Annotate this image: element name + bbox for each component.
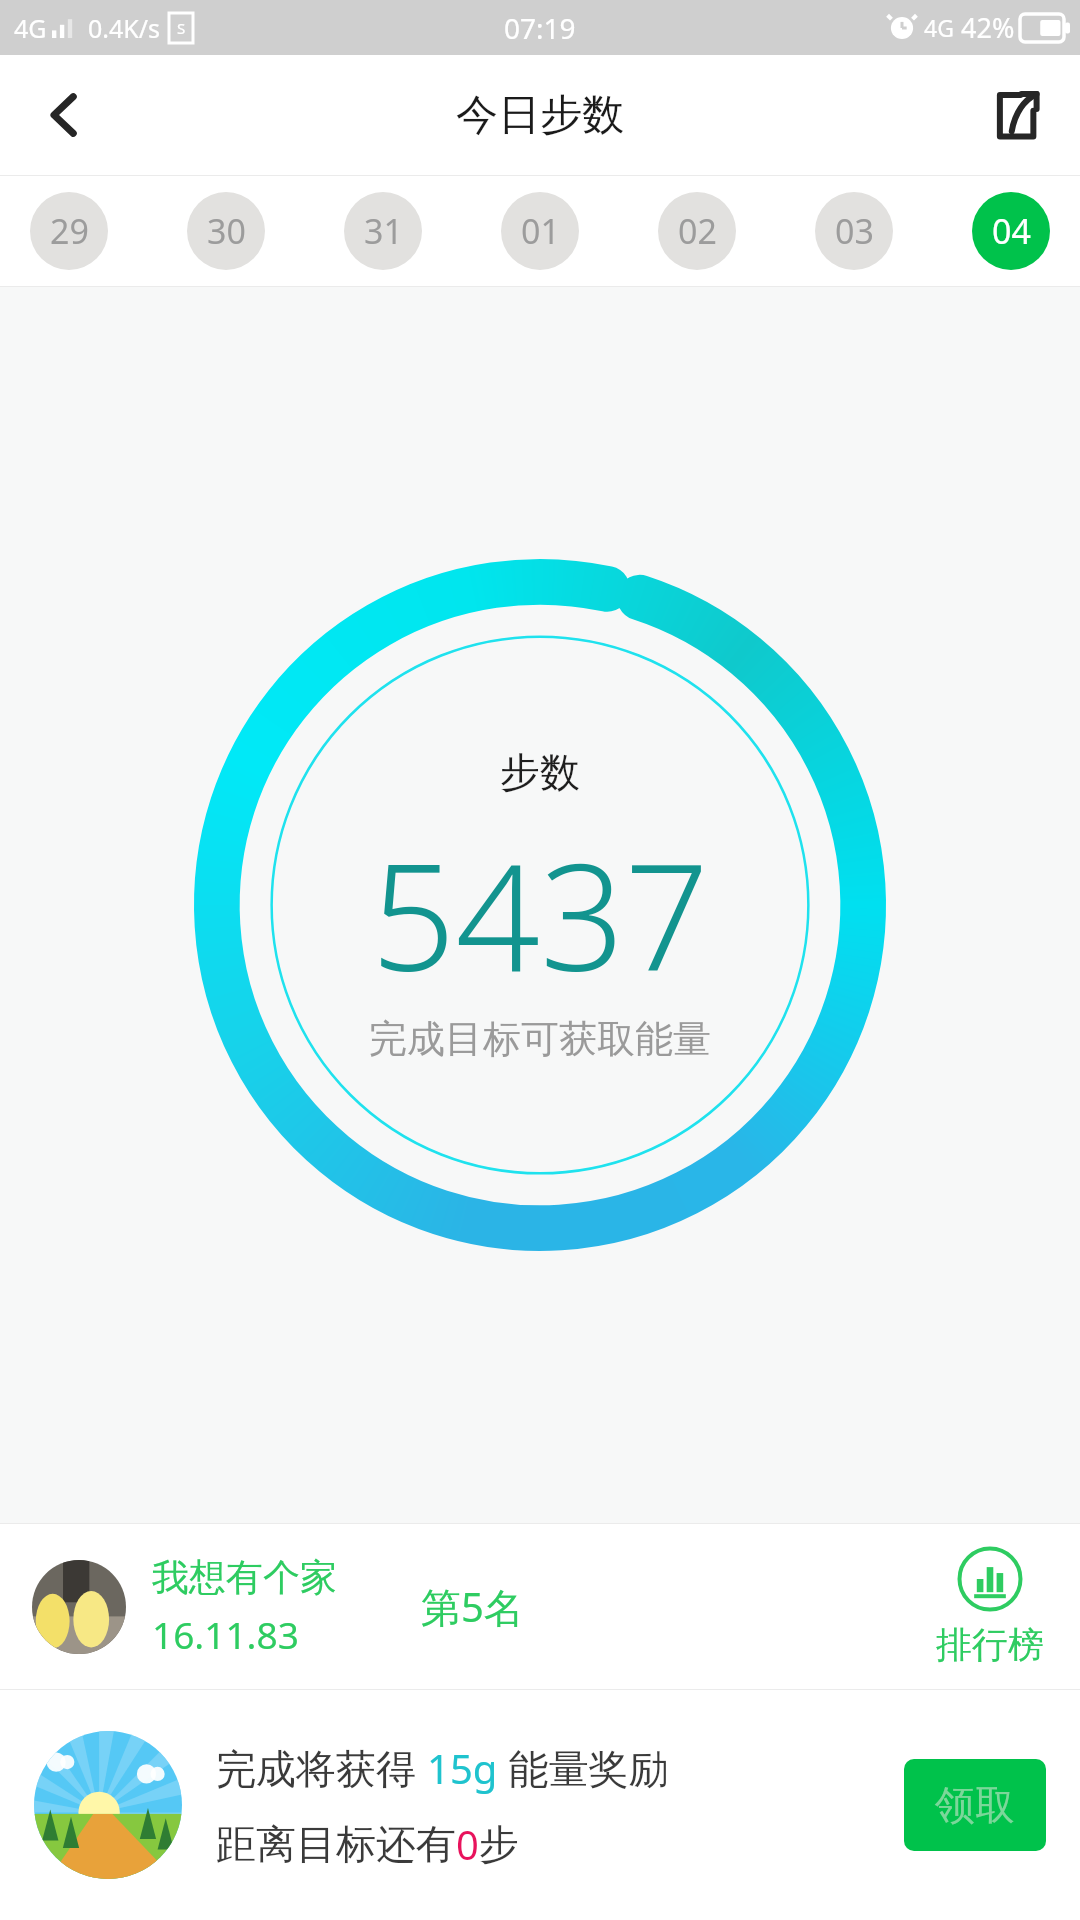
staticText: 完成目标可获取能量: [369, 1015, 711, 1063]
button[interactable]: 31: [344, 192, 422, 270]
button[interactable]: 30: [187, 192, 265, 270]
staticText: 4G: [14, 11, 47, 45]
staticText: 步: [479, 1819, 519, 1869]
button[interactable]: Share: [950, 55, 1080, 175]
staticText: 0.4K/s: [88, 11, 161, 45]
staticText: 步数: [500, 747, 580, 797]
staticText: 5437: [371, 813, 710, 1015]
staticText: 排行榜: [936, 1622, 1044, 1667]
staticText: 我想有个家: [152, 1554, 337, 1601]
staticText: 能量奖励: [498, 1740, 669, 1795]
button[interactable]: 03: [815, 192, 893, 270]
staticText: 02: [678, 208, 717, 254]
button[interactable]: 01: [501, 192, 579, 270]
staticText: 领取: [935, 1780, 1015, 1830]
staticText: 01: [521, 208, 560, 254]
staticText: 15g: [427, 1741, 498, 1795]
staticText: 03: [835, 208, 874, 254]
staticText: S: [177, 18, 186, 38]
staticText: 16.11.83: [152, 1609, 299, 1659]
button[interactable]: 29: [30, 192, 108, 270]
staticText: 今日步数: [456, 89, 624, 142]
staticText: 完成将获得: [216, 1740, 427, 1795]
staticText: 30: [207, 208, 246, 254]
staticText: 29: [50, 208, 89, 254]
staticText: 0: [456, 1817, 479, 1871]
button[interactable]: 04: [972, 192, 1050, 270]
button[interactable]: 领取: [904, 1759, 1046, 1851]
staticText: 07:19: [504, 9, 576, 47]
button[interactable]: Back: [0, 55, 130, 175]
button[interactable]: 我想有个家: [0, 1524, 1080, 1689]
staticText: 4G: [924, 12, 954, 43]
staticText: 04: [992, 208, 1031, 254]
staticText: 42%: [961, 9, 1015, 46]
button[interactable]: 排行榜: [932, 1542, 1048, 1671]
button[interactable]: 02: [658, 192, 736, 270]
staticText: 31: [364, 208, 403, 254]
staticText: 距离目标还有: [216, 1819, 456, 1869]
staticText: 第5名: [421, 1579, 524, 1634]
